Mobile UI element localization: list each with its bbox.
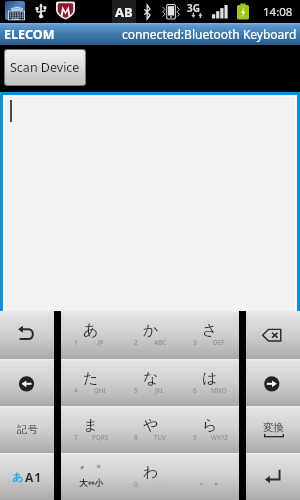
button[interactable]: 記号: [0, 406, 54, 453]
staticText: ゛゜: [69, 463, 102, 483]
staticText: TUV: [154, 433, 167, 442]
button[interactable]: は: [180, 359, 239, 406]
staticText: や: [143, 416, 159, 435]
staticText: 0: [134, 480, 138, 489]
button[interactable]: た: [61, 359, 121, 406]
staticText: MNO: [211, 386, 227, 395]
button[interactable]: ゛゜: [61, 453, 121, 500]
button[interactable]: な: [121, 359, 180, 406]
staticText: 7: [74, 433, 78, 442]
staticText: あ: [12, 470, 24, 484]
button[interactable]: Delete: [246, 311, 300, 359]
staticText: 4: [74, 386, 78, 395]
staticText: さ: [202, 321, 218, 340]
staticText: た: [83, 369, 99, 388]
staticText: あ: [83, 321, 99, 340]
staticText: ELECOM: [4, 26, 55, 43]
staticText: 2: [134, 338, 138, 347]
button[interactable]: Cursor right: [246, 359, 300, 406]
staticText: ら: [202, 416, 218, 435]
button[interactable]: Cursor left: [0, 359, 54, 406]
staticText: 6: [193, 386, 197, 395]
staticText: JKL: [155, 386, 165, 395]
staticText: わ: [143, 463, 159, 482]
button[interactable]: ま: [61, 406, 121, 453]
staticText: DEF: [213, 338, 225, 347]
staticText: 。: [214, 474, 225, 487]
staticText: 大⇔小: [79, 478, 104, 489]
button[interactable]: わ: [121, 453, 180, 500]
staticText: 5: [134, 386, 138, 395]
staticText: PQRS: [92, 433, 109, 442]
staticText: 8: [134, 433, 138, 442]
staticText: 、: [199, 474, 210, 487]
button[interactable]: Undo: [0, 311, 54, 359]
staticText: .@: [96, 338, 104, 347]
staticText: 変換: [263, 421, 284, 434]
staticText: Scan Device: [10, 59, 80, 76]
staticText: な: [143, 369, 159, 388]
button[interactable]: あ: [61, 311, 121, 359]
staticText: connected:Bluetooth Keyboard: [122, 26, 297, 42]
staticText: 14:08: [263, 4, 293, 20]
staticText: 3G: [187, 1, 200, 15]
button[interactable]: Scan Device: [5, 50, 85, 85]
staticText: WXYZ: [211, 433, 228, 442]
button[interactable]: Enter: [246, 453, 300, 500]
button[interactable]: さ: [180, 311, 239, 359]
staticText: ABC: [154, 338, 167, 347]
staticText: 1: [74, 338, 78, 347]
button[interactable]: あ: [0, 453, 54, 500]
button[interactable]: 変換: [246, 406, 300, 453]
button[interactable]: 、: [180, 453, 239, 500]
staticText: -: [159, 480, 162, 489]
staticText: は: [202, 369, 218, 388]
staticText: 9: [193, 433, 197, 442]
button[interactable]: や: [121, 406, 180, 453]
staticText: AB: [115, 3, 133, 21]
staticText: 3: [193, 338, 197, 347]
staticText: ま: [83, 416, 99, 435]
staticText: か: [143, 321, 159, 340]
staticText: GHI: [94, 386, 106, 395]
staticText: A1: [25, 469, 43, 485]
button[interactable]: ら: [180, 406, 239, 453]
staticText: 記号: [17, 423, 38, 436]
button[interactable]: か: [121, 311, 180, 359]
